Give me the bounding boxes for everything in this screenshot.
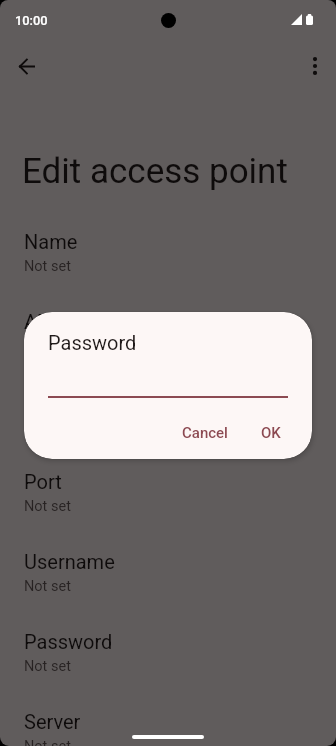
button[interactable]: APN	[0, 302, 336, 376]
staticText: OK	[261, 424, 281, 442]
button[interactable]: Server	[0, 702, 336, 746]
staticText: 10:00	[15, 13, 48, 28]
staticText: Cancel	[182, 424, 228, 442]
button[interactable]: Password	[0, 622, 336, 696]
button[interactable]: OK	[249, 418, 293, 448]
staticText: Not set	[24, 658, 71, 675]
button[interactable]: Port	[0, 462, 336, 536]
staticText: Not set	[24, 258, 71, 275]
staticText: Not set	[24, 498, 71, 515]
staticText: APN	[24, 310, 64, 333]
staticText: Name	[24, 230, 78, 253]
button[interactable]: Name	[0, 222, 336, 296]
staticText: Edit access point	[22, 151, 288, 192]
staticText: Username	[24, 550, 115, 573]
staticText: Password	[48, 331, 137, 354]
staticText: Server	[24, 710, 81, 733]
staticText: Not set	[24, 418, 71, 435]
staticText: Not set	[24, 338, 71, 355]
staticText: Not set	[24, 578, 71, 595]
button[interactable]: Username	[0, 542, 336, 616]
button[interactable]: Cancel	[170, 418, 240, 448]
button[interactable]: More options	[294, 45, 336, 87]
staticText: Password	[24, 630, 113, 653]
button[interactable]: Back	[6, 45, 48, 87]
button[interactable]: Proxy	[0, 382, 336, 456]
staticText: Port	[24, 470, 62, 493]
staticText: Not set	[24, 738, 71, 746]
staticText: Proxy	[24, 390, 74, 413]
